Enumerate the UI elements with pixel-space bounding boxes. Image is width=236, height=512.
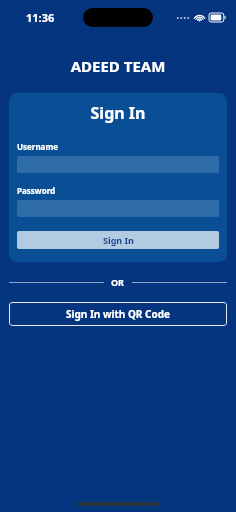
staticText: OR: [111, 276, 125, 288]
staticText: Sign In with QR Code: [66, 307, 170, 321]
staticText: Username: [17, 141, 58, 152]
staticText: Sign In: [103, 234, 134, 246]
staticText: ADEED TEAM: [0, 56, 236, 76]
button[interactable]: Sign In with QR Code: [9, 302, 227, 326]
staticText: 11:36: [26, 10, 55, 25]
staticText: Sign In: [17, 102, 219, 124]
button[interactable]: Sign In: [17, 231, 219, 249]
staticText: Password: [17, 185, 56, 196]
